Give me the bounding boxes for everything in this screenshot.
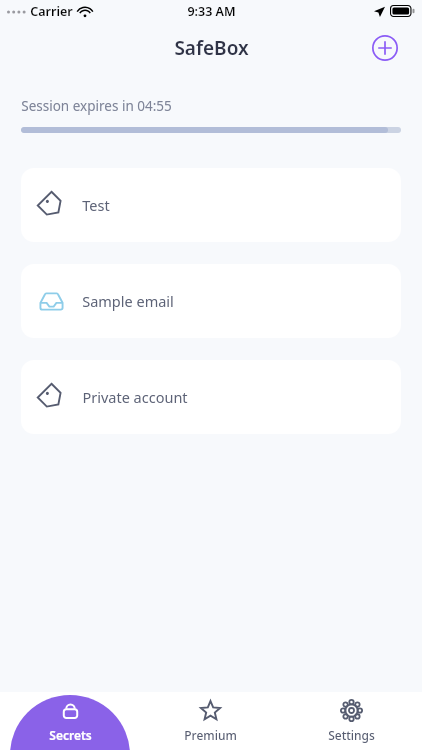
button[interactable]: Private account <box>21 360 401 434</box>
staticText: Premium <box>184 727 237 743</box>
staticText: Carrier <box>30 3 73 20</box>
staticText: Secrets <box>49 727 92 743</box>
staticText: Session expires in 04:55 <box>21 97 172 115</box>
staticText: 9:33 AM <box>187 3 236 20</box>
staticText: SafeBox <box>174 35 249 61</box>
button[interactable]: Secrets <box>0 692 140 750</box>
staticText: Settings <box>328 727 375 743</box>
button[interactable]: Add secret <box>369 32 401 64</box>
button[interactable]: Sample email <box>21 264 401 338</box>
staticText: Private account <box>82 387 188 407</box>
button[interactable]: Settings <box>281 692 422 750</box>
staticText: Sample email <box>82 291 174 311</box>
button[interactable]: Premium <box>140 692 281 750</box>
staticText: Test <box>82 195 110 215</box>
button[interactable]: Test <box>21 168 401 242</box>
